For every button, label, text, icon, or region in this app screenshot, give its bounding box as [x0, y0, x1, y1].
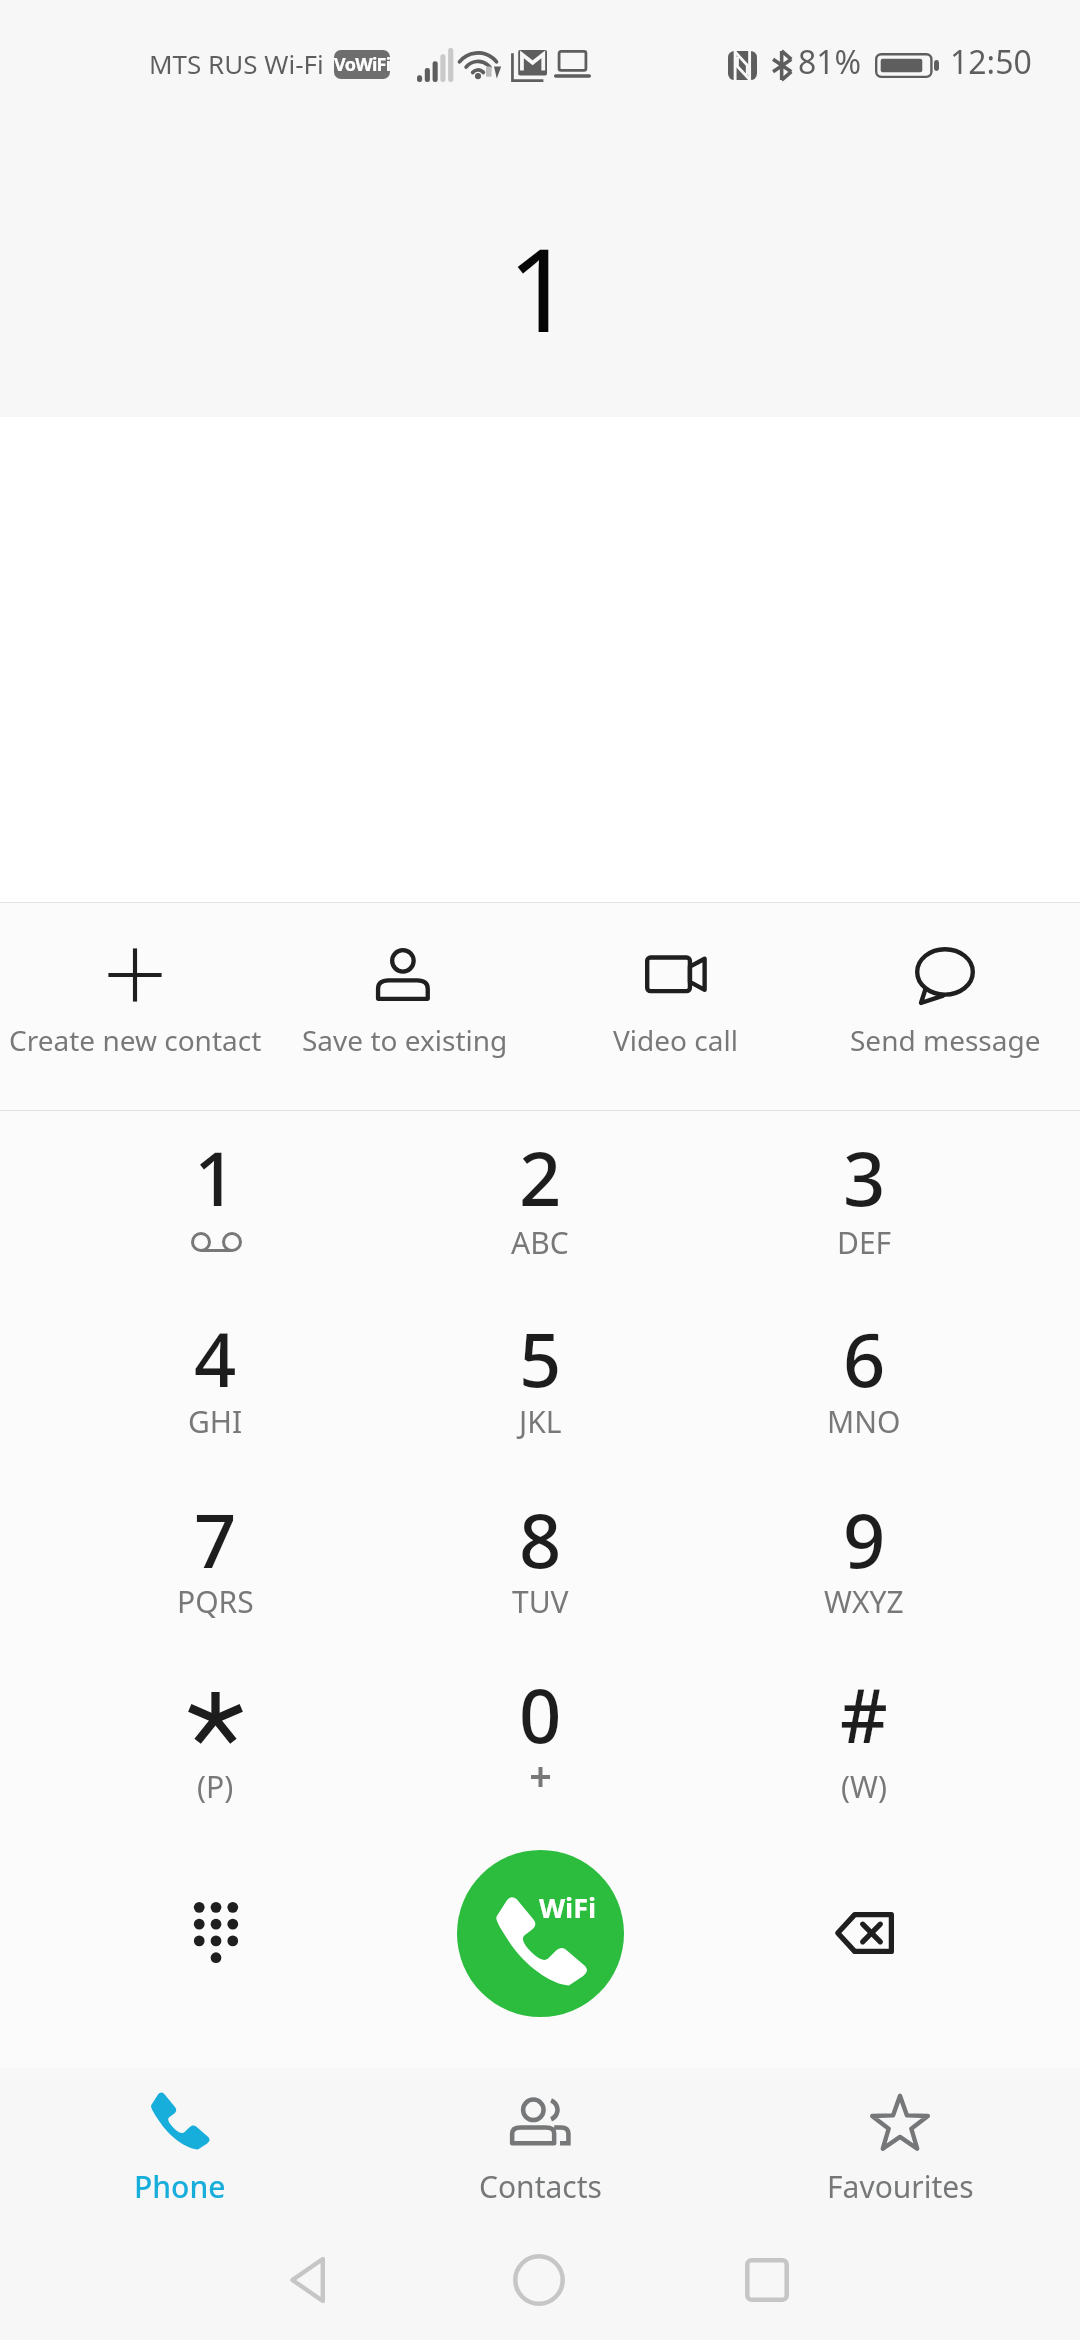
staticText: TUV [512, 1581, 569, 1622]
staticText: 3 [843, 1127, 886, 1228]
staticText: JKL [519, 1401, 562, 1442]
button[interactable]: 5 [380, 1270, 700, 1450]
staticText: 5 [519, 1308, 562, 1409]
staticText: 7 [194, 1489, 237, 1590]
staticText: 81% [798, 40, 862, 84]
staticText: PQRS [177, 1581, 254, 1622]
button[interactable]: Recents [677, 2233, 857, 2327]
button[interactable]: 6 [704, 1270, 1024, 1450]
staticText: # [840, 1664, 888, 1765]
button[interactable]: Dial pad [56, 1843, 376, 2023]
button[interactable]: Save to existing [270, 903, 540, 1110]
button[interactable]: Send message [810, 903, 1080, 1110]
button[interactable]: 1 [55, 1089, 375, 1269]
button[interactable]: Video call [540, 903, 810, 1110]
staticText: DEF [837, 1222, 892, 1263]
staticText: 1 [507, 208, 574, 366]
button[interactable]: 9 [704, 1451, 1024, 1631]
staticText: MNO [827, 1401, 901, 1442]
button[interactable]: 3 [704, 1089, 1024, 1269]
button[interactable]: # [704, 1626, 1024, 1806]
staticText: WXYZ [824, 1581, 904, 1622]
staticText: Send message [850, 1021, 1041, 1059]
staticText: (P) [197, 1766, 234, 1807]
button[interactable]: Contacts [360, 2068, 720, 2233]
button[interactable]: Delete [704, 1843, 1024, 2023]
staticText: Create new contact [9, 1021, 262, 1059]
button[interactable]: 2 [380, 1089, 700, 1269]
button[interactable]: 4 [55, 1270, 375, 1450]
button[interactable]: Create new contact [0, 903, 270, 1110]
staticText: 9 [843, 1489, 886, 1590]
staticText: ABC [511, 1222, 569, 1263]
staticText: Contacts [479, 2166, 602, 2207]
staticText: Phone [134, 2166, 226, 2207]
staticText: 12:50 [950, 40, 1032, 84]
button[interactable]: Home [449, 2233, 629, 2327]
staticText: GHI [188, 1401, 243, 1442]
staticText: VoWiFi [334, 52, 390, 77]
button[interactable]: Phone [0, 2068, 360, 2233]
button[interactable]: 8 [380, 1451, 700, 1631]
staticText: 1 [194, 1127, 237, 1228]
staticText: 4 [194, 1308, 237, 1409]
staticText: WiFi [539, 1889, 597, 1926]
button[interactable]: (P) [55, 1626, 375, 1806]
staticText: Video call [613, 1021, 738, 1059]
staticText: 2 [519, 1127, 562, 1228]
button[interactable]: Back [219, 2233, 399, 2327]
staticText: Save to existing [302, 1021, 508, 1059]
staticText: 0 [519, 1664, 562, 1765]
button[interactable]: Favourites [720, 2068, 1080, 2233]
staticText: (W) [841, 1766, 887, 1807]
staticText: MTS RUS Wi-Fi [149, 46, 324, 81]
button[interactable]: 7 [55, 1451, 375, 1631]
button[interactable]: Call [380, 1843, 700, 2023]
button[interactable]: 0 [380, 1626, 700, 1806]
staticText: 8 [519, 1489, 562, 1590]
staticText: Favourites [827, 2166, 974, 2207]
staticText: 6 [843, 1308, 886, 1409]
